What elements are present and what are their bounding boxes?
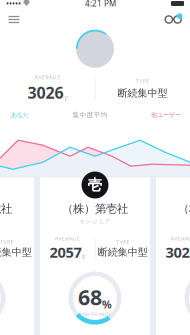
staticText: F xyxy=(64,94,67,103)
staticText: 断続集中型 xyxy=(0,246,32,258)
staticText: TYPE xyxy=(0,238,13,246)
staticText: 68 xyxy=(78,282,102,312)
staticText: ••••• xyxy=(6,0,21,9)
staticText: 2057 xyxy=(49,242,81,262)
staticText: 集中度平均 xyxy=(72,110,107,119)
staticText: （株）第参社 xyxy=(178,201,190,216)
staticText: AVERAGE xyxy=(35,74,60,81)
staticText: 3026 xyxy=(27,82,63,103)
staticText: （株）第弐社 xyxy=(0,201,12,216)
staticText: 断続集中型 xyxy=(117,87,167,99)
staticText: 壱 xyxy=(87,176,102,194)
staticText: AVERAGE xyxy=(171,235,190,242)
staticText: 4:21 PM xyxy=(85,0,116,9)
button[interactable]: 参 xyxy=(156,177,190,335)
staticText: TYPE xyxy=(116,238,129,246)
staticText: SYNCHRONIZE xyxy=(79,311,110,317)
staticText: 他ユーザー xyxy=(151,111,181,119)
staticText: （株）第壱社 xyxy=(62,201,128,216)
staticText: F xyxy=(82,253,85,262)
button[interactable]: 弐 xyxy=(0,177,34,335)
staticText: あなた xyxy=(11,111,29,119)
staticText: 3025 xyxy=(165,242,190,262)
staticText: TYPE xyxy=(136,78,149,85)
button[interactable]: 壱 xyxy=(40,177,150,335)
staticText: % xyxy=(102,297,112,312)
staticText: 断続集中型 xyxy=(98,246,148,258)
staticText: エンジニア xyxy=(79,218,111,225)
button[interactable]: Menu xyxy=(2,9,26,29)
button[interactable]: Glasses xyxy=(160,9,186,29)
staticText: AVERAGE xyxy=(55,235,80,242)
